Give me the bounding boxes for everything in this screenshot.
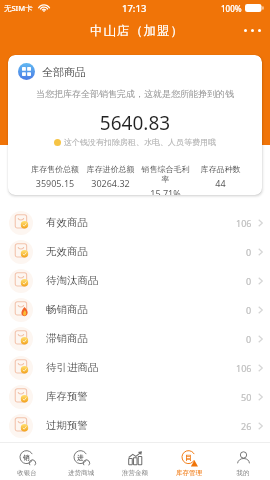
staticText: 当您把库存全部销售完成，这就是您所能挣到的钱 xyxy=(8,88,262,99)
staticText: 35905.15 xyxy=(27,177,83,189)
button[interactable]: 我的 xyxy=(216,446,270,477)
staticText: 待引进商品 xyxy=(46,361,99,374)
staticText: 滞销商品 xyxy=(46,332,88,345)
button[interactable]: 无效商品 xyxy=(0,237,270,266)
staticText: 无SIM卡 xyxy=(4,3,33,13)
staticText: 库存售价总额 xyxy=(27,164,83,174)
staticText: 106 xyxy=(236,362,252,374)
staticText: 44 xyxy=(193,177,248,189)
button[interactable]: 有效商品 xyxy=(0,208,270,237)
staticText: 淮营金额 xyxy=(108,469,162,477)
staticText: 过期预警 xyxy=(46,419,88,432)
staticText: 26 xyxy=(241,420,252,432)
staticText: 目 xyxy=(185,454,192,462)
staticText: 100% xyxy=(221,3,242,14)
staticText: 15.71% xyxy=(138,187,193,195)
staticText: 库存品种数 xyxy=(193,164,248,174)
staticText: 50 xyxy=(241,391,252,403)
staticText: 收银台 xyxy=(0,469,54,477)
button[interactable]: More options xyxy=(238,25,270,36)
button[interactable]: 畅销商品 xyxy=(0,295,270,324)
staticText: 全部商品 xyxy=(42,65,86,79)
staticText: 0 xyxy=(246,333,252,345)
staticText: 库存进价总额 xyxy=(83,164,138,174)
staticText: 畅销商品 xyxy=(46,303,88,316)
staticText: 0 xyxy=(246,304,252,316)
staticText: 无效商品 xyxy=(46,245,88,258)
staticText: 中山店（加盟） xyxy=(90,23,184,39)
staticText: 106 xyxy=(236,217,252,229)
staticText: 17:13 xyxy=(122,2,147,15)
staticText: 库存管理 xyxy=(162,469,216,477)
button[interactable]: 待淘汰商品 xyxy=(0,266,270,295)
button[interactable]: 库存预警 xyxy=(0,382,270,411)
button[interactable]: 淮营金额 xyxy=(108,446,162,477)
staticText: 30264.32 xyxy=(83,177,138,189)
button[interactable]: 过期预警 xyxy=(0,411,270,440)
staticText: 我的 xyxy=(216,469,270,477)
button[interactable]: 进 xyxy=(54,446,108,477)
button[interactable]: 销 xyxy=(0,446,54,477)
staticText: 0 xyxy=(246,246,252,258)
staticText: 销 xyxy=(23,454,30,462)
staticText: 有效商品 xyxy=(46,216,88,229)
staticText: 进货商城 xyxy=(54,469,108,477)
button[interactable]: 滞销商品 xyxy=(0,324,270,353)
staticText: 0 xyxy=(246,275,252,287)
staticText: 待淘汰商品 xyxy=(46,274,99,287)
staticText: 5640.83 xyxy=(8,110,262,136)
button[interactable]: 待引进商品 xyxy=(0,353,270,382)
staticText: 这个钱没有扣除房租、水电、人员等费用哦 xyxy=(64,137,216,147)
staticText: 销售综合毛利率 xyxy=(138,164,193,184)
staticText: 库存预警 xyxy=(46,390,88,403)
staticText: 进 xyxy=(77,454,84,462)
button[interactable]: 目 xyxy=(162,446,216,477)
